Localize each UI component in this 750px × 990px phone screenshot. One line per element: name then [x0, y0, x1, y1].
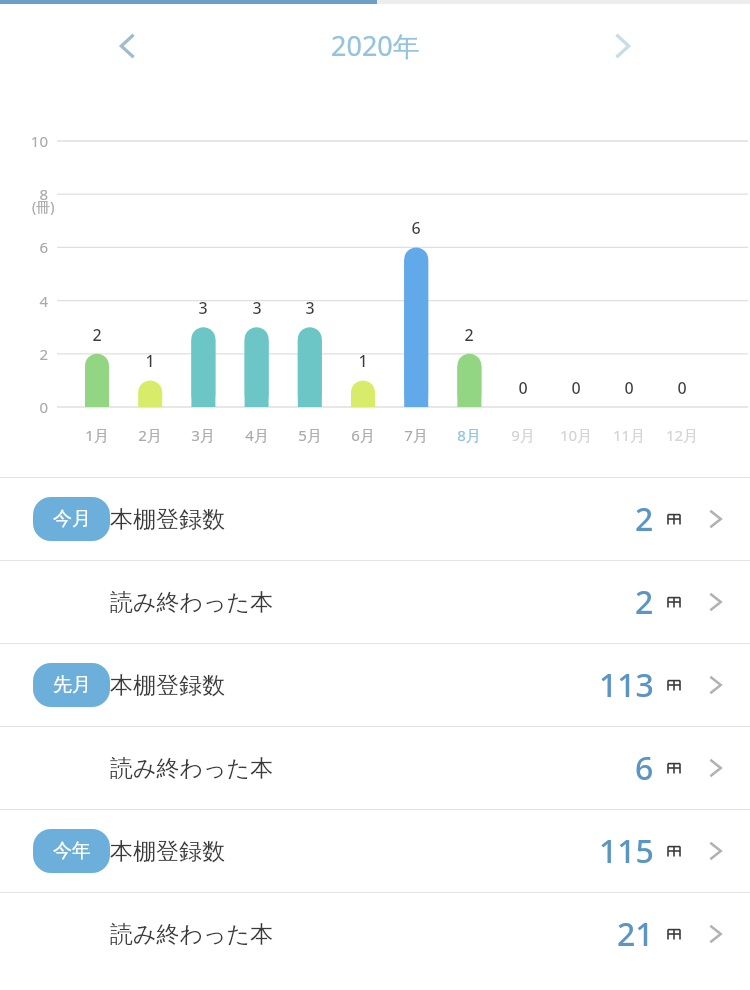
- staticText: 2020年: [331, 27, 420, 64]
- button[interactable]: 先月: [0, 644, 750, 726]
- button[interactable]: Previous year: [104, 22, 152, 70]
- staticText: 3: [183, 297, 223, 319]
- staticText: 3月: [175, 425, 231, 445]
- staticText: 本棚登録数: [110, 671, 599, 700]
- staticText: 2: [449, 324, 489, 346]
- staticText: 0: [503, 377, 543, 399]
- staticText: 読み終わった本: [110, 754, 635, 783]
- button[interactable]: Next year: [598, 22, 646, 70]
- staticText: 21: [617, 912, 654, 956]
- staticText: 10月: [548, 425, 604, 445]
- staticText: 読み終わった本: [110, 920, 617, 949]
- staticText: 3: [237, 297, 277, 319]
- staticText: 読み終わった本: [110, 588, 635, 617]
- staticText: 先月: [53, 673, 91, 697]
- staticText: 今月: [53, 507, 91, 531]
- staticText: 今年: [53, 839, 91, 863]
- staticText: 0: [39, 397, 48, 417]
- staticText: 1: [343, 350, 383, 372]
- staticText: 10: [30, 131, 48, 151]
- staticText: 本棚登録数: [110, 837, 599, 866]
- staticText: 0: [662, 377, 702, 399]
- staticText: 12月: [654, 425, 710, 445]
- staticText: 115: [599, 829, 654, 873]
- staticText: 11月: [601, 425, 657, 445]
- staticText: 0: [556, 377, 596, 399]
- staticText: 6: [635, 746, 654, 790]
- staticText: (冊): [32, 197, 55, 216]
- button[interactable]: 読み終わった本: [0, 893, 750, 975]
- staticText: 1: [130, 350, 170, 372]
- staticText: 1月: [69, 425, 125, 445]
- button[interactable]: 読み終わった本: [0, 561, 750, 643]
- staticText: 113: [599, 663, 654, 707]
- button[interactable]: 今年: [0, 810, 750, 892]
- staticText: 2: [635, 580, 654, 624]
- staticText: 4月: [229, 425, 285, 445]
- staticText: 2: [39, 344, 48, 364]
- staticText: 5月: [282, 425, 338, 445]
- staticText: 本棚登録数: [110, 505, 635, 534]
- staticText: 2月: [122, 425, 178, 445]
- staticText: 8: [39, 184, 48, 204]
- staticText: 4: [39, 291, 48, 311]
- button[interactable]: 読み終わった本: [0, 727, 750, 809]
- staticText: 6: [39, 237, 48, 257]
- staticText: 9月: [495, 425, 551, 445]
- staticText: 7月: [388, 425, 444, 445]
- staticText: 2: [635, 497, 654, 541]
- staticText: 3: [290, 297, 330, 319]
- staticText: 6月: [335, 425, 391, 445]
- staticText: 0: [609, 377, 649, 399]
- staticText: 2: [77, 324, 117, 346]
- staticText: 8月: [441, 425, 497, 445]
- button[interactable]: 今月: [0, 478, 750, 560]
- staticText: 6: [396, 217, 436, 239]
